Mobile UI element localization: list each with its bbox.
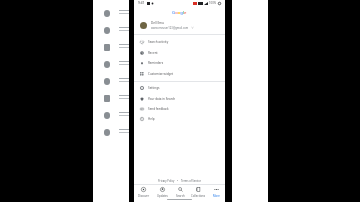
button[interactable]: Privacy Policy: [158, 179, 175, 183]
staticText: Dell Emu: [151, 21, 164, 25]
staticText: Collections: [191, 194, 206, 198]
button[interactable]: More: [207, 184, 225, 200]
staticText: Settings: [148, 86, 160, 90]
staticText: Customize widget: [148, 72, 174, 76]
button[interactable]: Send feedback: [134, 104, 225, 114]
staticText: 100%: [209, 1, 217, 5]
staticText: Recent: [148, 51, 158, 55]
staticText: Reminders: [148, 61, 164, 65]
staticText: awesomeuser123@gmail.com: [151, 26, 189, 30]
button[interactable]: Updates: [153, 184, 171, 200]
staticText: Help: [148, 117, 155, 121]
button[interactable]: Settings: [134, 83, 225, 93]
staticText: 9:41: [138, 1, 145, 5]
button[interactable]: Collections: [189, 184, 207, 200]
button[interactable]: Previous app card: [93, 0, 129, 202]
button[interactable]: Terms of Service: [181, 179, 201, 183]
staticText: Google: [172, 9, 187, 15]
staticText: •: [175, 179, 181, 183]
button[interactable]: Search: [171, 184, 189, 200]
button[interactable]: Reminders: [134, 58, 225, 68]
button[interactable]: Recent: [134, 48, 225, 58]
staticText: Your data in Search: [148, 97, 176, 101]
button[interactable]: Help: [134, 114, 225, 124]
button[interactable]: Your data in Search: [134, 94, 225, 104]
staticText: Search activity: [148, 40, 169, 44]
button[interactable]: Search activity: [134, 37, 225, 47]
staticText: More: [213, 194, 220, 198]
button[interactable]: Dell Emu: [134, 18, 225, 32]
staticText: Updates: [157, 194, 168, 198]
button[interactable]: Customize widget: [134, 69, 225, 79]
button[interactable]: Discover: [134, 184, 153, 200]
staticText: Search: [176, 194, 185, 198]
staticText: Send feedback: [148, 107, 169, 111]
staticText: Discover: [138, 194, 150, 198]
